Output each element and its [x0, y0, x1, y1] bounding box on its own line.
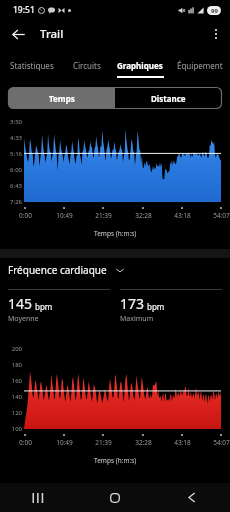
staticText: 173: [120, 294, 145, 313]
staticText: Moyenne: [8, 314, 39, 324]
staticText: 145: [8, 294, 33, 313]
staticText: Temps (h:m:s): [94, 229, 137, 238]
button[interactable]: Équipement: [169, 52, 230, 79]
button[interactable]: Circuits: [63, 52, 111, 79]
staticText: Statistiques: [10, 60, 54, 71]
staticText: Trail: [40, 26, 64, 42]
staticText: 5:16: [0, 150, 22, 158]
staticText: Distance: [151, 93, 186, 104]
staticText: 180: [0, 361, 22, 369]
staticText: Fréquence cardiaque: [8, 263, 107, 277]
staticText: 140: [0, 393, 22, 401]
staticText: Temps (h:m:s): [94, 456, 137, 465]
staticText: 10:49: [56, 438, 73, 447]
staticText: 99: [211, 7, 218, 15]
button[interactable]: Statistiques: [0, 52, 63, 79]
staticText: 43:18: [174, 438, 191, 447]
staticText: 32:28: [135, 211, 152, 220]
staticText: 0:00: [19, 438, 32, 447]
staticText: 54:07: [213, 438, 230, 447]
staticText: Maximum: [120, 314, 154, 324]
button[interactable]: Back: [153, 483, 230, 512]
staticText: 0:00: [19, 211, 32, 220]
staticText: 4:33: [0, 134, 22, 142]
staticText: 43:18: [174, 211, 191, 220]
staticText: 32:28: [135, 438, 152, 447]
staticText: bpm: [35, 301, 53, 312]
staticText: 19:51: [13, 4, 35, 16]
button[interactable]: Temps: [8, 87, 115, 109]
staticText: 3:50: [0, 118, 22, 126]
staticText: Temps: [49, 93, 75, 104]
staticText: 120: [0, 409, 22, 417]
button[interactable]: Recent apps: [0, 483, 76, 512]
staticText: 10:49: [56, 211, 73, 220]
button[interactable]: Fréquence cardiaque: [8, 259, 230, 281]
staticText: 100: [0, 425, 22, 433]
staticText: Équipement: [177, 60, 223, 71]
button[interactable]: Distance: [115, 87, 222, 109]
staticText: 54:07: [213, 211, 230, 220]
staticText: bpm: [147, 301, 165, 312]
button[interactable]: More options: [202, 20, 230, 48]
button[interactable]: Back: [0, 20, 36, 48]
button[interactable]: Graphiques: [111, 52, 169, 79]
staticText: 6:00: [0, 166, 22, 174]
button[interactable]: Home: [76, 483, 153, 512]
staticText: 21:39: [95, 211, 112, 220]
staticText: 160: [0, 377, 22, 385]
staticText: 200: [0, 345, 22, 353]
staticText: Graphiques: [117, 60, 163, 71]
staticText: 21:39: [95, 438, 112, 447]
staticText: Circuits: [73, 60, 101, 71]
staticText: 6:43: [0, 182, 22, 190]
staticText: 7:26: [0, 198, 22, 206]
